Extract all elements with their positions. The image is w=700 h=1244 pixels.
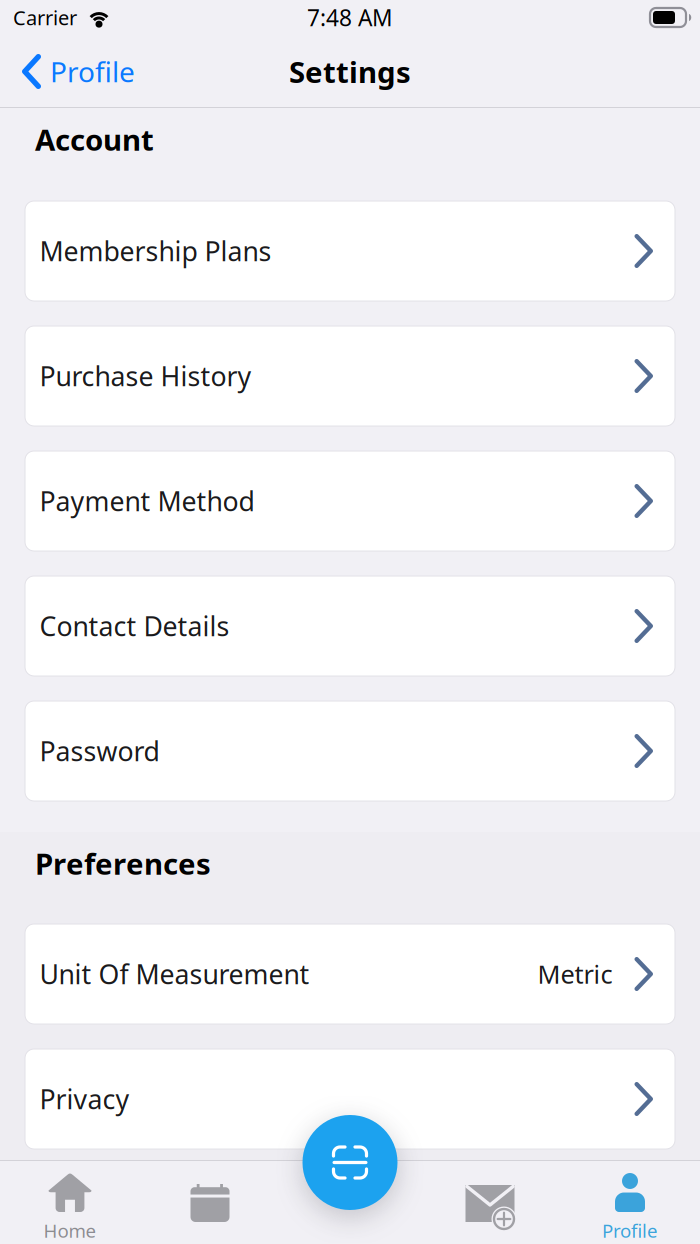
button[interactable]: Scan	[302, 1115, 397, 1210]
button[interactable]: Payment Method	[25, 451, 675, 551]
staticText: Carrier	[13, 4, 77, 31]
staticText: Password	[39, 733, 159, 769]
button[interactable]: Home	[0, 1160, 140, 1244]
staticText: Unit Of Measurement	[39, 956, 309, 992]
button[interactable]: Membership Plans	[25, 201, 675, 301]
button[interactable]: Profile	[0, 46, 149, 97]
staticText: Preferences	[35, 844, 211, 883]
button[interactable]: Calendar	[140, 1160, 280, 1244]
button[interactable]: Messages	[420, 1160, 560, 1244]
staticText: Profile	[50, 53, 135, 90]
staticText: Metric	[537, 957, 612, 991]
staticText: Membership Plans	[39, 233, 271, 269]
staticText: Payment Method	[39, 483, 254, 519]
staticText: Home	[43, 1218, 96, 1243]
button[interactable]: Profile	[560, 1160, 700, 1244]
staticText: Account	[35, 120, 154, 159]
staticText: Contact Details	[39, 608, 229, 644]
staticText: Purchase History	[39, 358, 251, 394]
staticText: 7:48 AM	[307, 2, 393, 32]
staticText: Privacy	[39, 1081, 129, 1117]
button[interactable]: Purchase History	[25, 326, 675, 426]
button[interactable]: Password	[25, 701, 675, 801]
button[interactable]: Privacy	[25, 1049, 675, 1149]
staticText: Profile	[602, 1218, 658, 1243]
button[interactable]: Contact Details	[25, 576, 675, 676]
button[interactable]: Unit Of Measurement	[25, 924, 675, 1024]
staticText: Settings	[289, 52, 411, 91]
